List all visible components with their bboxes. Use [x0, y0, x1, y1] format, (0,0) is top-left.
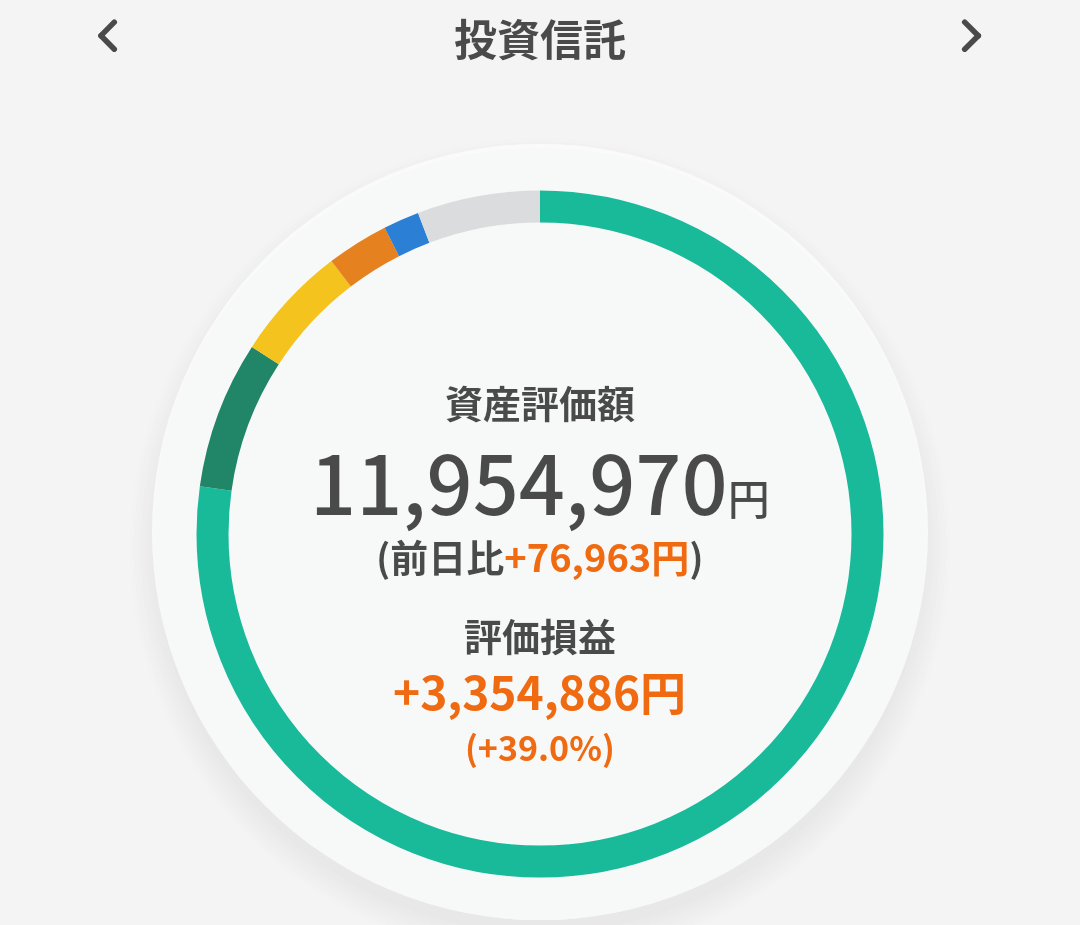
staticText: +3,354,886円: [393, 657, 687, 724]
staticText: (+39.0%): [465, 722, 615, 771]
staticText: 11,954,970円: [310, 421, 770, 538]
button[interactable]: [941, 6, 1001, 66]
staticText: 評価損益: [464, 607, 617, 662]
staticText: 投資信託: [454, 6, 626, 68]
staticText: 資産評価額: [445, 374, 636, 429]
staticText: (前日比+76,963円): [376, 528, 704, 583]
button[interactable]: [77, 6, 137, 66]
